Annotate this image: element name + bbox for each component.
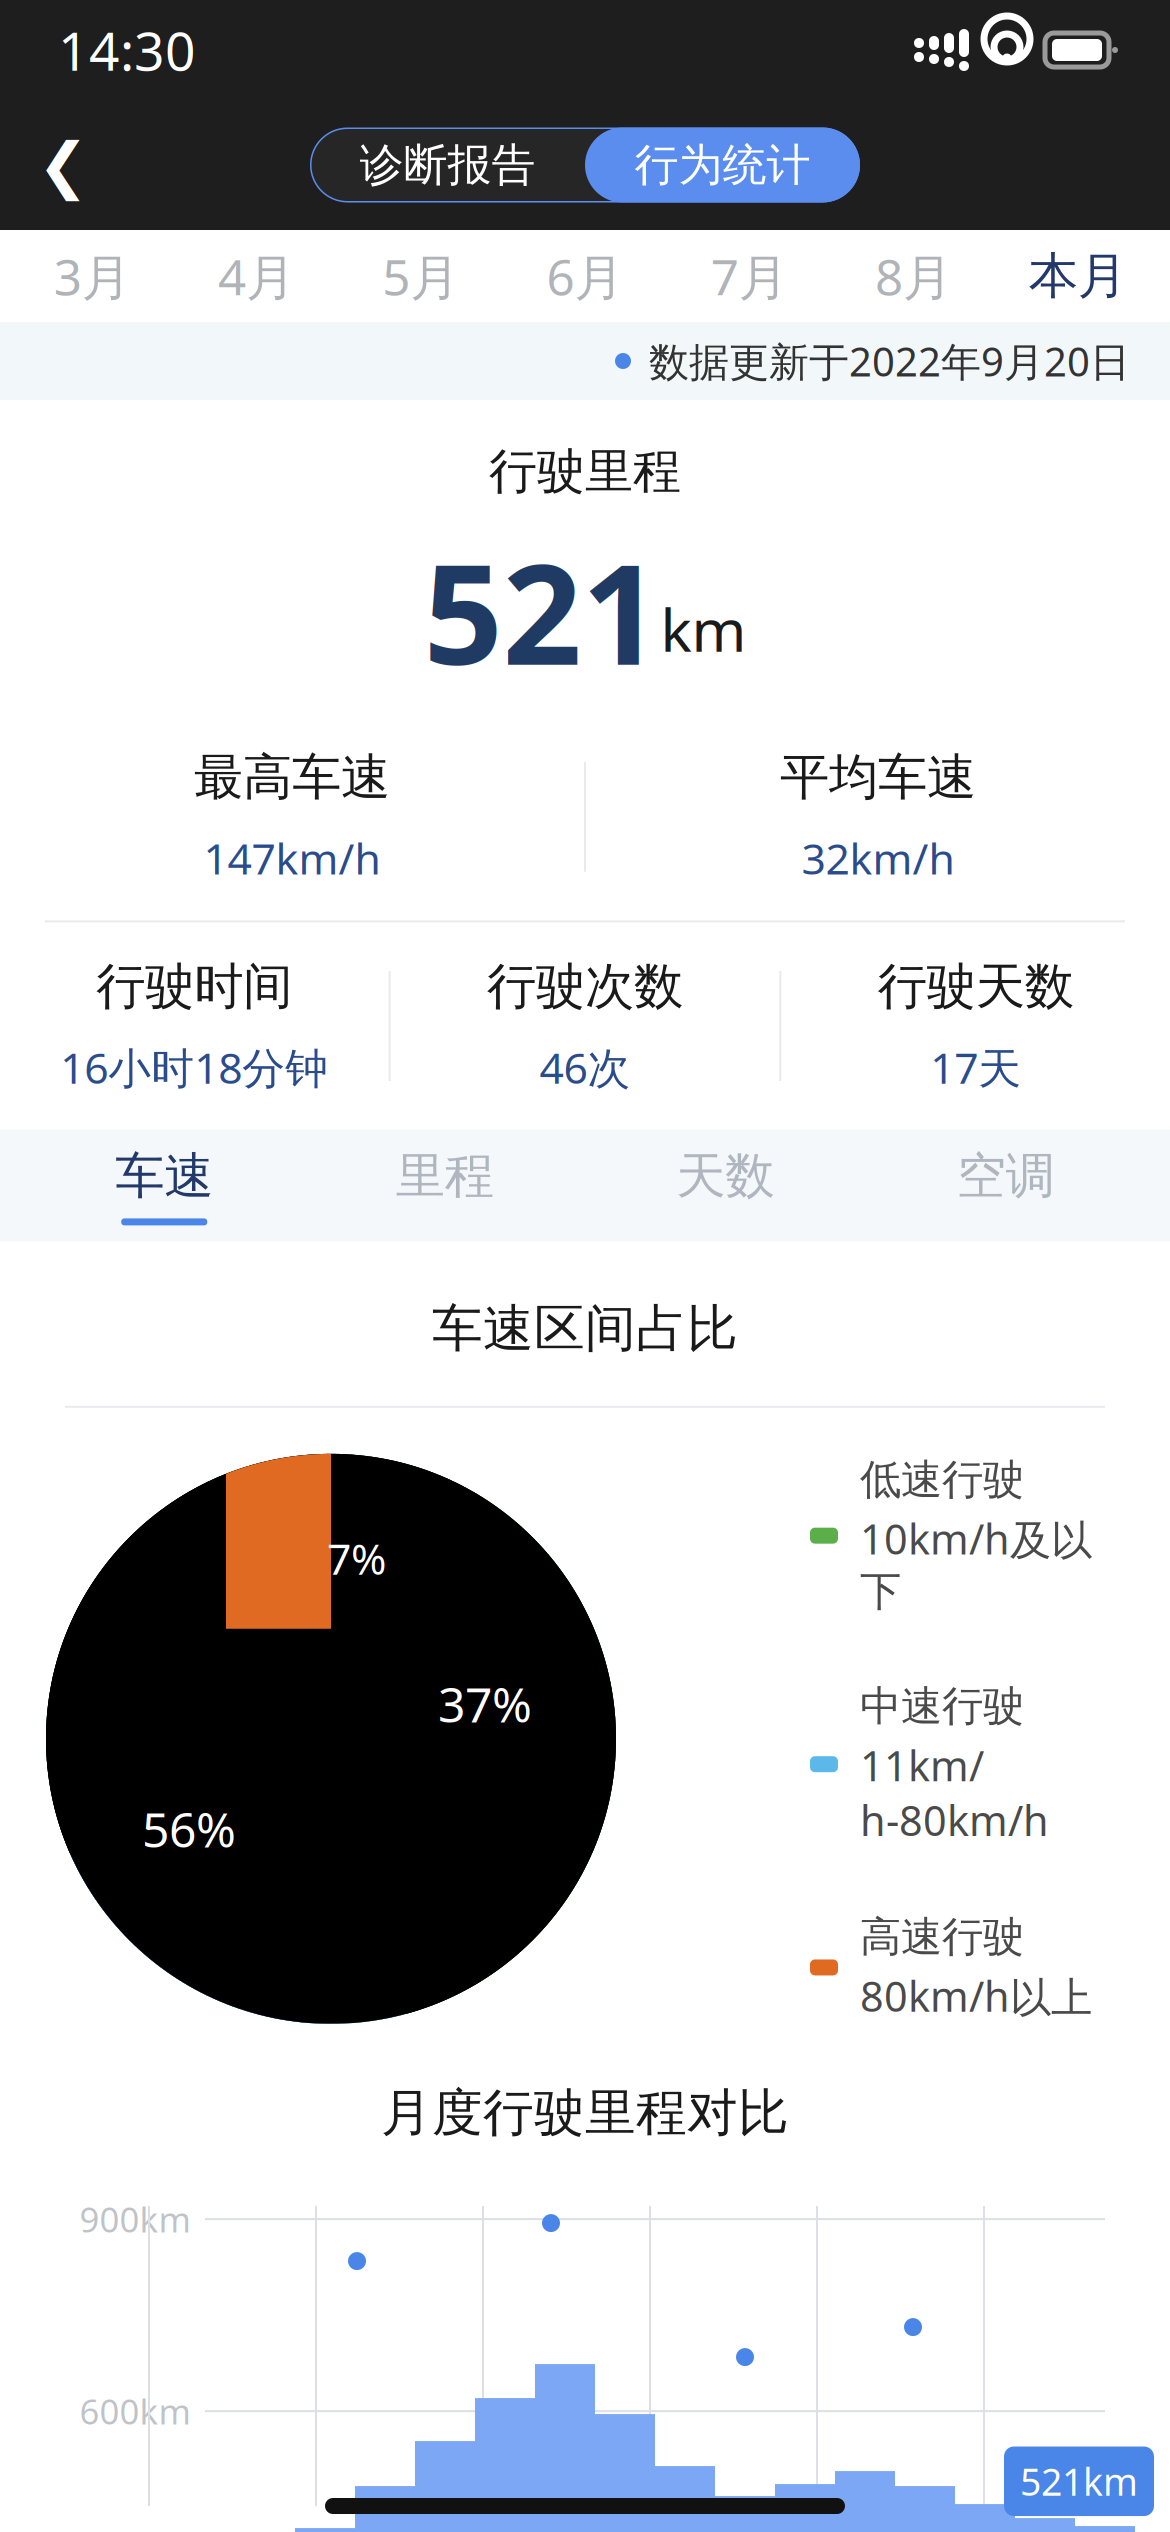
button[interactable]: 里程 — [304, 1131, 585, 1241]
staticText: km — [660, 590, 746, 668]
staticText: ❮ — [37, 130, 88, 200]
staticText: 5月 — [382, 243, 459, 309]
button[interactable]: 诊断报告 — [310, 127, 585, 202]
staticText: 行驶天数 — [878, 956, 1074, 1017]
staticText: 147km/h — [203, 830, 380, 886]
staticText: 56% — [142, 1797, 236, 1861]
staticText: 7月 — [711, 243, 788, 309]
button[interactable]: Back — [18, 120, 108, 210]
staticText: 行驶次数 — [487, 956, 683, 1017]
staticText: 天数 — [676, 1146, 774, 1206]
staticText: 11km/h-80km/h — [860, 1738, 1049, 1847]
button[interactable]: 7月 — [667, 231, 831, 321]
staticText: 车速区间占比 — [432, 1298, 738, 1360]
staticText: 3月 — [54, 243, 131, 309]
button[interactable]: 5月 — [339, 231, 503, 321]
staticText: 16小时18分钟 — [60, 1039, 328, 1096]
staticText: 46次 — [539, 1039, 630, 1096]
staticText: 600km — [79, 2388, 190, 2434]
button[interactable]: 本月 — [996, 231, 1160, 321]
button[interactable]: 8月 — [831, 231, 996, 321]
staticText: 10km/h及以下 — [860, 1511, 1092, 1617]
staticText: 521km — [1020, 2456, 1138, 2506]
staticText: 月度行驶里程对比 — [381, 2082, 789, 2144]
staticText: 高速行驶 — [860, 1911, 1024, 1962]
staticText: 32km/h — [801, 830, 954, 886]
staticText: 17天 — [930, 1039, 1021, 1096]
staticText: 8月 — [875, 243, 952, 309]
staticText: 空调 — [957, 1146, 1055, 1206]
button[interactable]: 行为统计 — [585, 127, 860, 202]
button[interactable]: 6月 — [503, 231, 667, 321]
button[interactable]: 4月 — [174, 231, 339, 321]
staticText: 37% — [438, 1672, 532, 1736]
button[interactable]: 空调 — [865, 1131, 1146, 1241]
button[interactable]: 天数 — [585, 1131, 865, 1241]
staticText: 80km/h以上 — [860, 1968, 1092, 2023]
staticText: 低速行驶 — [860, 1454, 1024, 1505]
staticText: 车速 — [115, 1146, 213, 1206]
staticText: 行驶里程 — [489, 442, 681, 501]
staticText: 6月 — [546, 243, 623, 309]
staticText: 521 — [423, 519, 660, 703]
staticText: 7% — [327, 1530, 386, 1586]
staticText: 最高车速 — [194, 747, 390, 808]
staticText: 4月 — [218, 243, 295, 309]
staticText: 本月 — [1029, 246, 1127, 306]
staticText: 中速行驶 — [860, 1681, 1024, 1732]
staticText: 诊断报告 — [359, 138, 535, 192]
staticText: 14:30 — [58, 15, 196, 85]
button[interactable]: 车速 — [24, 1131, 304, 1241]
staticText: 里程 — [396, 1146, 494, 1206]
button[interactable]: 3月 — [10, 231, 174, 321]
staticText: 行为统计 — [634, 138, 810, 192]
staticText: 行驶时间 — [96, 956, 292, 1017]
staticText: 900km — [79, 2196, 190, 2242]
staticText: 平均车速 — [780, 747, 976, 808]
staticText: 数据更新于2022年9月20日 — [649, 334, 1130, 387]
